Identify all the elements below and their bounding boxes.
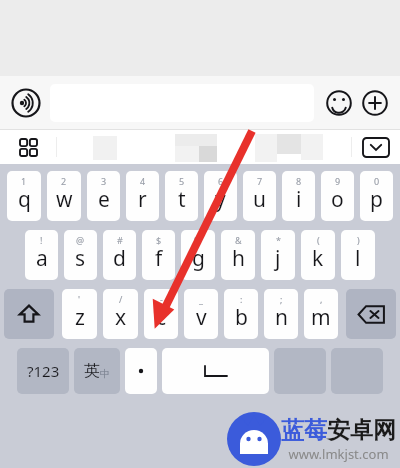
button[interactable]: *: [261, 230, 295, 280]
button[interactable]: -: [144, 289, 178, 339]
staticText: $: [156, 234, 162, 246]
staticText: p: [370, 185, 383, 214]
button[interactable]: Shift: [4, 289, 54, 339]
staticText: ,: [320, 293, 323, 305]
button[interactable]: @: [64, 230, 97, 280]
staticText: ): [357, 234, 360, 246]
button[interactable]: 1: [7, 171, 41, 221]
staticText: 3: [101, 175, 107, 187]
staticText: &: [235, 234, 242, 246]
button[interactable]: _: [184, 289, 218, 339]
staticText: o: [331, 185, 344, 214]
button[interactable]: Backspace: [346, 289, 396, 339]
staticText: _: [199, 293, 203, 305]
staticText: z: [75, 303, 85, 332]
staticText: 2: [61, 175, 67, 187]
button[interactable]: 9: [321, 171, 354, 221]
button[interactable]: !: [25, 230, 58, 280]
staticText: e: [98, 185, 110, 214]
button[interactable]: :: [224, 289, 258, 339]
staticText: !: [40, 234, 43, 246]
button[interactable]: 3: [87, 171, 120, 221]
button[interactable]: 6: [204, 171, 237, 221]
button[interactable]: 英: [74, 348, 120, 394]
staticText: i: [296, 185, 302, 214]
staticText: g: [192, 244, 205, 273]
staticText: ;: [280, 293, 283, 305]
staticText: 英: [84, 361, 100, 381]
button[interactable]: /: [103, 289, 138, 339]
staticText: www.lmkjst.com: [288, 445, 389, 463]
staticText: #: [117, 234, 123, 246]
staticText: s: [75, 244, 86, 273]
staticText: y: [215, 185, 226, 214]
button[interactable]: ;: [264, 289, 298, 339]
button[interactable]: ,: [304, 289, 338, 339]
staticText: :: [240, 293, 243, 305]
staticText: 9: [335, 175, 341, 187]
button[interactable]: Period: [125, 348, 157, 394]
staticText: 7: [257, 175, 263, 187]
staticText: u: [253, 185, 266, 214]
staticText: 6: [218, 175, 224, 187]
staticText: c: [156, 303, 167, 332]
staticText: k: [312, 244, 324, 273]
button[interactable]: 5: [165, 171, 198, 221]
staticText: 1: [21, 175, 27, 187]
staticText: n: [275, 303, 288, 332]
staticText: x: [115, 303, 127, 332]
staticText: r: [138, 185, 147, 214]
staticText: w: [56, 185, 73, 214]
button[interactable]: More: [360, 88, 390, 118]
button[interactable]: &: [221, 230, 255, 280]
staticText: f: [155, 244, 163, 273]
staticText: %: [194, 234, 202, 246]
staticText: a: [36, 244, 48, 273]
staticText: t: [178, 185, 186, 214]
button[interactable]: 7: [243, 171, 276, 221]
staticText: ': [78, 293, 81, 305]
staticText: m: [311, 303, 331, 332]
staticText: d: [113, 244, 126, 273]
staticText: l: [355, 244, 361, 273]
button[interactable]: ?123: [17, 348, 69, 394]
staticText: b: [235, 303, 248, 332]
staticText: j: [275, 244, 281, 273]
staticText: 中: [100, 367, 110, 380]
button[interactable]: #: [103, 230, 136, 280]
button[interactable]: 0: [360, 171, 393, 221]
staticText: 安卓网: [327, 416, 396, 445]
staticText: (: [317, 234, 320, 246]
button[interactable]: Apps: [0, 130, 56, 164]
staticText: ?123: [27, 361, 60, 381]
button[interactable]: ): [341, 230, 375, 280]
staticText: 5: [179, 175, 185, 187]
staticText: 蓝莓: [281, 416, 327, 445]
button[interactable]: 2: [47, 171, 81, 221]
button[interactable]: Collapse keyboard panel: [352, 130, 400, 164]
staticText: 4: [140, 175, 146, 187]
staticText: h: [232, 244, 245, 273]
staticText: 0: [374, 175, 380, 187]
button[interactable]: 8: [282, 171, 315, 221]
button[interactable]: 4: [126, 171, 159, 221]
staticText: *: [276, 234, 281, 246]
button[interactable]: $: [142, 230, 175, 280]
staticText: q: [18, 185, 31, 214]
staticText: v: [196, 303, 207, 332]
staticText: 8: [296, 175, 302, 187]
staticText: /: [119, 293, 123, 305]
staticText: -: [160, 293, 163, 305]
button[interactable]: ': [62, 289, 97, 339]
button[interactable]: (: [301, 230, 335, 280]
button[interactable]: Voice input: [10, 87, 42, 119]
staticText: @: [76, 234, 85, 246]
button[interactable]: Space: [162, 348, 269, 394]
button[interactable]: %: [181, 230, 215, 280]
button[interactable]: Emoji: [324, 88, 354, 118]
